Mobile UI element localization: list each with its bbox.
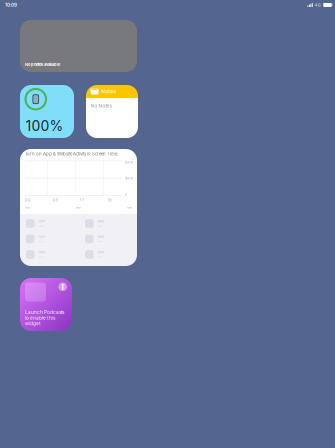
staticText: 18 <box>107 198 111 202</box>
button[interactable]: Launch Podcasts to enable this widget <box>20 278 72 331</box>
staticText: No photos available <box>25 62 60 67</box>
button[interactable]: No photos available <box>20 20 137 72</box>
staticText: 4G <box>315 3 321 7</box>
staticText: 12 <box>80 198 84 202</box>
staticText: 10:09 <box>5 2 17 8</box>
staticText: Notes <box>101 89 116 94</box>
staticText: Launch Podcasts to enable this widget <box>25 309 64 326</box>
button[interactable]: 100% <box>20 85 74 138</box>
staticText: 0 <box>124 192 127 196</box>
staticText: Turn on App & Website Activity in Screen… <box>25 151 118 157</box>
button[interactable]: Turn on App & Website Activity in Screen… <box>20 149 137 266</box>
staticText: 06 <box>52 198 57 202</box>
staticText: 00 <box>25 198 31 202</box>
staticText: 60m <box>124 160 133 164</box>
button[interactable]: Notes <box>86 85 138 138</box>
staticText: 30m <box>124 176 133 180</box>
staticText: No Notes <box>90 103 111 109</box>
staticText: 100% <box>25 117 63 134</box>
